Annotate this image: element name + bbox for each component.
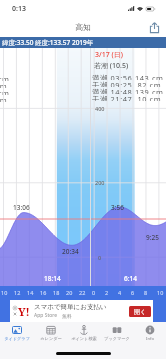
staticText: Info (146, 336, 154, 342)
button[interactable]: Y! (10, 300, 153, 322)
staticText: Y! (18, 304, 30, 319)
staticText: 6:14 (124, 274, 137, 283)
staticText: 20 (66, 289, 73, 296)
staticText: 400 (95, 105, 105, 112)
button[interactable]: カレンダー (34, 322, 67, 344)
staticText: App Store (34, 312, 58, 319)
staticText: 20:34 (62, 247, 79, 256)
staticText: 16 (40, 289, 47, 296)
staticText: 12 (14, 289, 21, 296)
staticText: 8 (144, 289, 148, 296)
staticText: 0 (92, 289, 96, 296)
staticText: 干潮 21:47 10 cm (0, 95, 8, 102)
button[interactable]: 開く (129, 306, 151, 317)
staticText: 10 (1, 289, 8, 296)
staticText: 干潮 09:25 82 cm (0, 81, 8, 88)
staticText: 14 (27, 289, 34, 296)
staticText: 9:25 (146, 233, 159, 242)
staticText: 干潮 21:47 10 cm (92, 94, 162, 101)
button[interactable]: Info (133, 322, 166, 344)
staticText: 4 (118, 289, 122, 296)
staticText: 開く (134, 308, 147, 316)
button[interactable]: ブックマーク (100, 322, 133, 344)
staticText: ブックマーク (104, 336, 130, 341)
staticText: 6 (131, 289, 135, 296)
staticText: スマホで簡単にお支払い (34, 303, 107, 311)
staticText: 22 (79, 289, 86, 296)
staticText: 3/17 (日) (95, 50, 123, 60)
staticText: 0:13 (12, 4, 26, 14)
staticText: タイドグラフ (4, 336, 30, 341)
staticText: 200 (95, 179, 105, 186)
button[interactable]: Share (146, 19, 162, 35)
staticText: 3:56 (111, 203, 124, 212)
staticText: 満潮 14:48 139 cm (0, 88, 10, 95)
staticText: 10 (157, 289, 164, 296)
staticText: 0 (98, 254, 102, 261)
staticText: カレンダー (40, 336, 62, 341)
staticText: 緯度:33.50 経度:133.57 2019年 (2, 38, 94, 47)
staticText: 満潮 03:56 143 cm (0, 74, 10, 81)
staticText: 13:06 (13, 203, 30, 212)
staticText: 18 (53, 289, 60, 296)
staticText: 無料 (62, 313, 72, 319)
button[interactable]: タイドグラフ (0, 322, 34, 344)
staticText: 若潮 (10.5) (94, 61, 129, 71)
staticText: 干潮 09:25 82 cm (92, 80, 162, 87)
staticText: 2 (105, 289, 109, 296)
staticText: 18:14 (44, 274, 61, 283)
staticText: ポイント検索 (71, 336, 97, 341)
staticText: 満潮 14:48 139 cm (92, 87, 164, 94)
button[interactable]: ポイント検索 (67, 322, 100, 344)
staticText: 満潮 03:56 143 cm (92, 73, 164, 80)
staticText: 高知 (75, 22, 91, 32)
